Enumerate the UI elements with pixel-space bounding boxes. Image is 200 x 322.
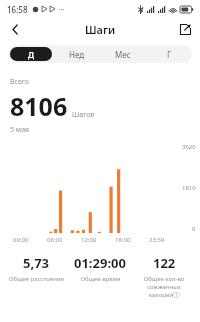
- staticText: 18:00: [115, 236, 131, 244]
- staticText: 1810: [182, 184, 196, 192]
- button[interactable]: Мес: [102, 47, 144, 61]
- staticText: 5 мая: [10, 125, 30, 135]
- staticText: 8106: [10, 89, 68, 123]
- staticText: Д: [28, 49, 35, 60]
- button[interactable]: 01:29:00: [68, 254, 132, 283]
- staticText: Шагов: [72, 110, 95, 120]
- staticText: Всего: [10, 77, 29, 87]
- staticText: 0: [192, 225, 196, 233]
- button[interactable]: Share: [174, 18, 196, 40]
- staticText: 01:29:00: [74, 254, 126, 272]
- button[interactable]: Д: [10, 47, 52, 61]
- staticText: 06:00: [47, 236, 63, 244]
- staticText: Г: [167, 49, 172, 60]
- staticText: ···: [58, 4, 65, 15]
- staticText: Нед: [69, 49, 85, 60]
- button[interactable]: Back: [4, 18, 26, 40]
- staticText: Общее время: [80, 275, 121, 283]
- staticText: 122: [153, 254, 176, 272]
- staticText: Общее кол-во сожженных калорийⓘ: [132, 275, 196, 299]
- button[interactable]: Г: [148, 47, 190, 61]
- button[interactable]: 5,73: [4, 254, 68, 283]
- staticText: 12:00: [81, 236, 97, 244]
- staticText: 16:58: [7, 4, 28, 15]
- staticText: Шаги: [85, 22, 116, 37]
- button[interactable]: 122: [132, 254, 196, 299]
- staticText: 00:00: [13, 236, 29, 244]
- staticText: 5,73: [23, 254, 50, 272]
- staticText: Мес: [115, 49, 131, 60]
- staticText: 3620: [182, 143, 196, 151]
- staticText: Общее расстояние: [9, 275, 64, 283]
- staticText: 23:59: [149, 236, 165, 244]
- button[interactable]: Нед: [56, 47, 98, 61]
